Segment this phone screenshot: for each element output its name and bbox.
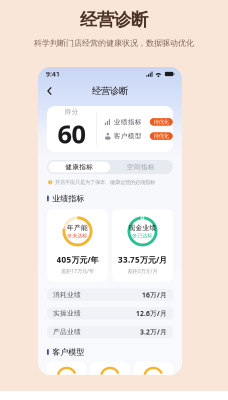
staticText: 健康指标 xyxy=(65,163,93,171)
staticText: 经营诊断 xyxy=(80,9,148,30)
staticText: 现金业绩 xyxy=(128,224,156,232)
staticText: 开店不应只是为了保本、健康运营的必须指标 xyxy=(55,179,155,186)
staticText: 业绩指标 xyxy=(52,194,84,203)
button[interactable]: 实操业绩 xyxy=(47,307,173,320)
staticText: 3.2万/月 xyxy=(140,327,167,336)
staticText: 得分 xyxy=(64,108,78,116)
staticText: 60 xyxy=(57,117,85,150)
staticText: 未达标 xyxy=(72,232,87,239)
staticText: 科学判断门店经营的健康状况，数据驱动优化 xyxy=(34,38,194,48)
staticText: 实操业绩 xyxy=(53,309,81,317)
staticText: 业绩指标 xyxy=(114,118,142,126)
staticText: 差距0万元/月 xyxy=(127,267,157,275)
staticText: 年产能 xyxy=(67,224,88,232)
staticText: 已达标 xyxy=(137,232,152,239)
staticText: 33.75万元/月 xyxy=(118,254,167,265)
staticText: ! xyxy=(50,180,51,185)
staticText: 客户模型 xyxy=(114,132,142,140)
button[interactable]: 健康指标 xyxy=(48,161,110,172)
staticText: 差距17万元/年 xyxy=(61,267,94,275)
staticText: 消耗业绩 xyxy=(53,291,81,299)
button[interactable]: 空间指标 xyxy=(110,161,171,172)
staticText: 405万元/年 xyxy=(56,254,98,265)
button[interactable]: 产品业绩 xyxy=(47,326,173,338)
staticText: 12.6万/月 xyxy=(136,309,167,318)
button[interactable]: 返回 xyxy=(44,84,55,98)
staticText: 待优化 xyxy=(154,133,169,139)
staticText: 16万/月 xyxy=(142,290,167,299)
staticText: 待优化 xyxy=(154,119,169,125)
staticText: 经营诊断 xyxy=(92,85,128,97)
staticText: 9:41 xyxy=(46,70,60,78)
staticText: 空间指标 xyxy=(127,163,155,171)
staticText: 客户模型 xyxy=(52,347,84,357)
staticText: 产品业绩 xyxy=(53,328,81,336)
button[interactable]: 消耗业绩 xyxy=(47,289,173,301)
